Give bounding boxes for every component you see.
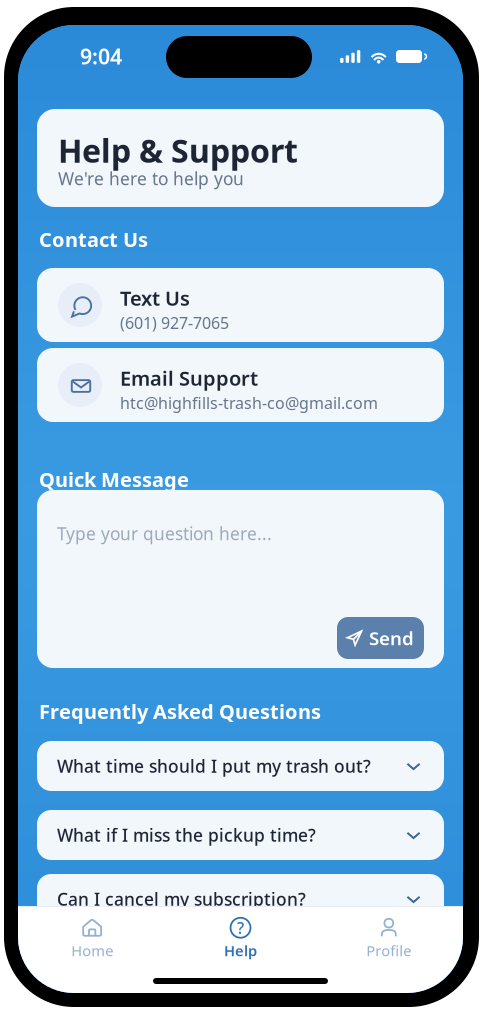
staticText: htc@highfills-trash-co@gmail.com <box>120 392 378 413</box>
staticText: Send <box>369 626 414 650</box>
staticText: Contact Us <box>39 226 148 253</box>
staticText: 9:04 <box>80 42 122 70</box>
button[interactable]: What if I miss the pickup time? <box>37 810 444 860</box>
button[interactable]: Can I cancel my subscription? <box>37 874 444 924</box>
staticText: Frequently Asked Questions <box>39 698 321 725</box>
staticText: Text Us <box>120 285 190 311</box>
button[interactable]: ? <box>166 915 315 963</box>
staticText: Help & Support <box>58 129 298 171</box>
staticText: Type your question here... <box>57 522 272 545</box>
button[interactable]: Send <box>337 617 424 659</box>
staticText: Profile <box>366 941 411 960</box>
staticText: What time should I put my trash out? <box>57 754 371 777</box>
staticText: Quick Message <box>39 466 189 493</box>
staticText: What if I miss the pickup time? <box>57 823 316 846</box>
staticText: We're here to help you <box>58 167 244 190</box>
button[interactable]: Email Support <box>37 348 444 422</box>
button[interactable]: Text Us <box>37 268 444 342</box>
staticText: Can I cancel my subscription? <box>57 887 306 910</box>
staticText: Home <box>71 941 113 960</box>
staticText: (601) 927-7065 <box>120 312 229 333</box>
button[interactable]: Profile <box>315 915 463 963</box>
staticText: Email Support <box>120 365 258 391</box>
button[interactable]: What time should I put my trash out? <box>37 741 444 791</box>
staticText: ? <box>237 917 244 938</box>
staticText: Help <box>224 941 257 960</box>
button[interactable]: Home <box>18 915 166 963</box>
